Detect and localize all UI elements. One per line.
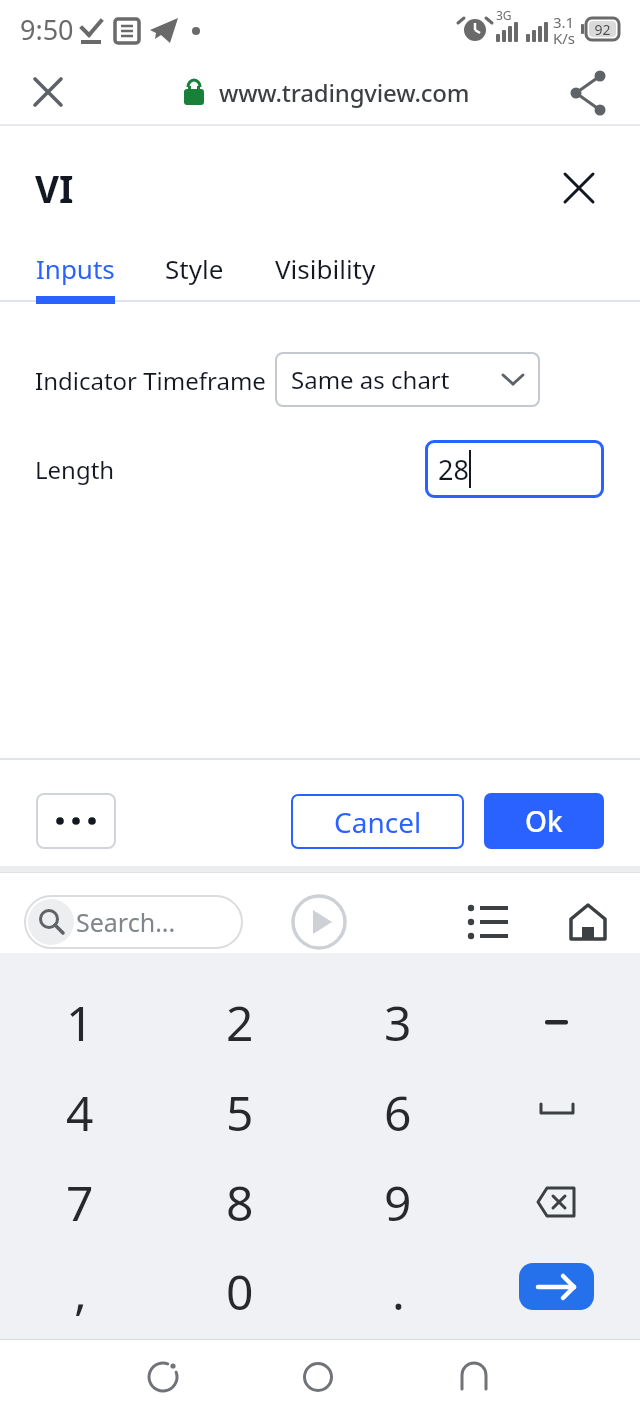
staticText: VI <box>35 163 74 213</box>
button[interactable]: 5 <box>170 1068 310 1156</box>
staticText: Indicator Timeframe <box>35 364 266 397</box>
staticText: 3.1 <box>553 12 575 32</box>
staticText: 5 <box>226 1080 254 1145</box>
staticText: 1 <box>66 990 94 1055</box>
staticText: Ok <box>525 802 563 840</box>
staticText: 7 <box>66 1170 94 1235</box>
staticText: Length <box>35 453 115 486</box>
button[interactable]: 7 <box>10 1158 150 1246</box>
button[interactable]: Ok <box>484 793 604 849</box>
button[interactable]: Style <box>165 240 227 296</box>
staticText: 92 <box>594 20 611 39</box>
button[interactable] <box>291 894 347 950</box>
staticText: Visibility <box>275 251 376 286</box>
button[interactable] <box>288 1347 348 1407</box>
button[interactable] <box>486 1068 626 1156</box>
staticText: www.tradingview.com <box>219 76 470 109</box>
button[interactable]: Visibility <box>275 240 383 296</box>
button[interactable]: Same as chart <box>275 352 540 407</box>
staticText: 0 <box>226 1259 254 1324</box>
staticText: 4 <box>66 1080 94 1145</box>
button[interactable] <box>133 1347 193 1407</box>
button[interactable] <box>519 1263 594 1310</box>
button[interactable]: 4 <box>10 1068 150 1156</box>
staticText: 9 <box>384 1170 412 1235</box>
staticText: 3 <box>384 990 412 1055</box>
staticText: 8 <box>226 1170 254 1235</box>
staticText: 28 <box>438 451 469 488</box>
button[interactable]: 28 <box>425 440 604 498</box>
button[interactable] <box>486 1158 626 1246</box>
button[interactable]: 0 <box>170 1247 310 1335</box>
staticText: , <box>74 1259 87 1324</box>
button[interactable]: 8 <box>170 1158 310 1246</box>
staticText: K/s <box>553 28 576 48</box>
button[interactable]: , <box>10 1247 150 1335</box>
button[interactable] <box>564 68 614 118</box>
staticText: Style <box>165 251 224 286</box>
button[interactable] <box>566 897 614 947</box>
button[interactable] <box>557 166 601 210</box>
button[interactable]: Search... <box>24 895 243 949</box>
staticText: 2 <box>226 990 254 1055</box>
button[interactable]: Cancel <box>291 794 464 849</box>
staticText: Cancel <box>334 803 422 841</box>
staticText: Inputs <box>36 251 115 286</box>
button[interactable]: 3 <box>328 978 468 1066</box>
staticText: 3G <box>496 7 512 23</box>
staticText: Search... <box>76 905 176 939</box>
staticText: Same as chart <box>291 363 450 396</box>
button[interactable] <box>36 793 116 849</box>
button[interactable]: 9 <box>328 1158 468 1246</box>
button[interactable] <box>22 66 74 118</box>
button[interactable]: 6 <box>328 1068 468 1156</box>
button[interactable]: Inputs <box>36 240 116 296</box>
staticText: 6 <box>384 1080 412 1145</box>
button[interactable]: 1 <box>10 978 150 1066</box>
button[interactable]: 2 <box>170 978 310 1066</box>
button[interactable]: . <box>328 1247 468 1335</box>
button[interactable] <box>486 978 626 1066</box>
staticText: . <box>392 1259 405 1324</box>
button[interactable] <box>464 897 514 947</box>
button[interactable] <box>444 1347 504 1407</box>
staticText: 9:50 <box>20 11 74 48</box>
